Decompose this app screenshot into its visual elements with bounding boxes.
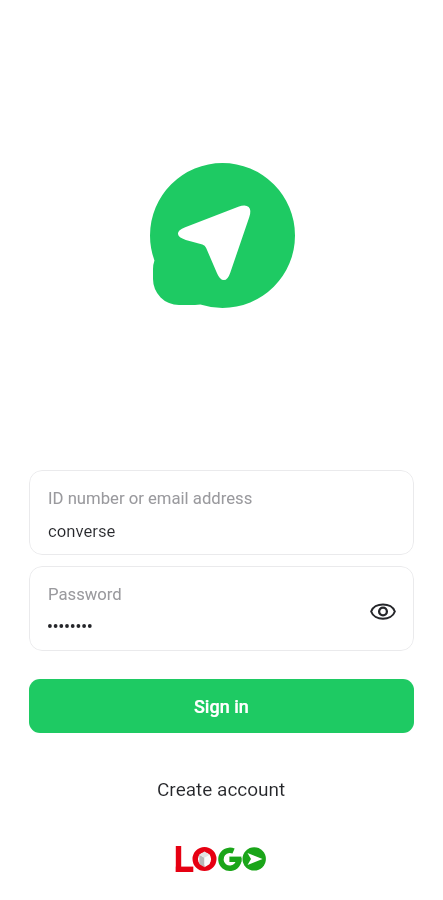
staticText: Create account [157, 778, 286, 800]
staticText: ID number or email address [48, 489, 253, 509]
staticText: Password [48, 585, 122, 605]
button[interactable]: Sign in [29, 679, 414, 733]
staticText: Sign in [194, 696, 249, 717]
button[interactable]: ID number or email address [29, 470, 414, 555]
button[interactable]: Create account [147, 773, 296, 805]
button[interactable]: Password [29, 566, 414, 651]
button[interactable]: Show password [363, 591, 403, 631]
staticText: converse [48, 522, 116, 542]
